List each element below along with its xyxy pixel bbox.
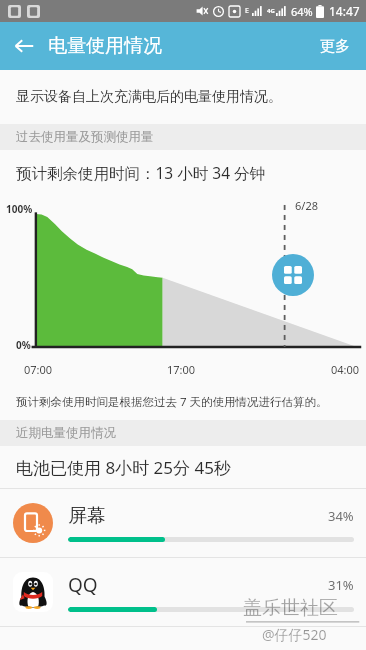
staticText: 31% [328,576,354,594]
staticText: E [245,6,249,16]
staticText: 64% [291,4,313,19]
staticText: 盖乐世社区 [243,596,338,620]
button[interactable]: 更多 [304,25,366,68]
staticText: 更多 [320,37,350,56]
staticText: @仔仔520 [262,625,327,644]
staticText: 预计剩余使用时间是根据您过去 7 天的使用情况进行估算的。 [16,394,328,410]
button[interactable]: 屏幕 [0,489,366,557]
button[interactable]: Apps [272,254,314,296]
button[interactable]: QQ [0,558,366,626]
staticText: 屏幕 [68,504,106,528]
staticText: 100% [6,202,33,216]
staticText: 预计剩余使用时间：13 小时 34 分钟 [16,162,266,183]
staticText: 4G [267,7,275,15]
staticText: 07:00 [24,362,53,377]
staticText: QQ [68,572,98,598]
staticText: 6/28 [295,198,318,213]
button[interactable]: Back [0,22,48,70]
staticText: 14:47 [329,3,360,19]
staticText: 过去使用量及预测使用量 [16,129,154,145]
staticText: 近期电量使用情况 [16,425,116,441]
staticText: 电量使用情况 [48,34,162,58]
staticText: 显示设备自上次充满电后的电量使用情况。 [16,88,282,106]
staticText: 17:00 [167,362,196,377]
staticText: 34% [328,507,354,525]
staticText: 电池已使用 8小时 25分 45秒 [16,456,231,479]
staticText: 04:00 [331,362,360,377]
staticText: 0% [16,338,31,352]
